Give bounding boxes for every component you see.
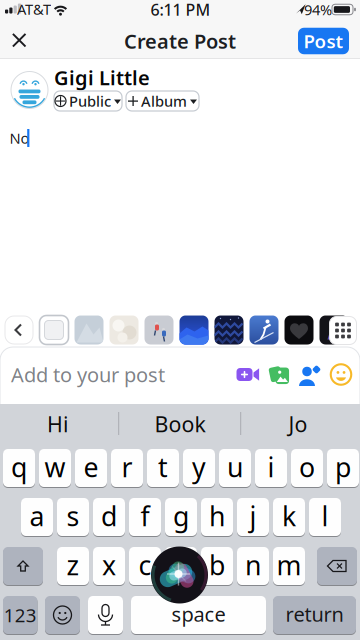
staticText: AT&T <box>17 0 51 19</box>
button[interactable]: p <box>327 448 359 487</box>
staticText: w <box>44 449 65 485</box>
button[interactable]: Hi <box>3 405 113 443</box>
staticText: t <box>158 449 168 485</box>
button[interactable]: v <box>165 546 197 585</box>
staticText: 94% <box>304 0 332 19</box>
button[interactable] <box>267 363 291 387</box>
staticText: g <box>173 498 189 534</box>
staticText: f <box>140 498 149 534</box>
button[interactable]: j <box>237 497 269 536</box>
staticText: v <box>174 547 188 583</box>
button[interactable] <box>39 315 68 344</box>
staticText: r <box>121 449 132 485</box>
staticText: Gigi Little <box>54 64 150 91</box>
button[interactable]: l <box>309 497 341 536</box>
button[interactable] <box>6 27 32 53</box>
button[interactable]: u <box>219 448 251 487</box>
button[interactable]: h <box>201 497 233 536</box>
staticText: No <box>9 128 29 148</box>
button[interactable]: Post <box>298 28 349 54</box>
button[interactable] <box>3 546 43 585</box>
staticText: e <box>83 449 98 485</box>
button[interactable] <box>45 595 80 634</box>
staticText: z <box>66 547 79 583</box>
button[interactable]: z <box>57 546 89 585</box>
button[interactable]: Book <box>122 405 237 443</box>
button[interactable] <box>284 315 313 344</box>
button[interactable] <box>88 595 123 634</box>
button[interactable]: k <box>273 497 305 536</box>
button[interactable] <box>74 315 103 344</box>
button[interactable]: Jo <box>243 405 353 443</box>
button[interactable] <box>151 546 208 603</box>
button[interactable]: x <box>93 546 125 585</box>
staticText: p <box>335 449 351 485</box>
staticText: j <box>249 498 256 534</box>
staticText: Book <box>154 410 205 438</box>
button[interactable] <box>144 315 173 344</box>
button[interactable]: m <box>273 546 305 585</box>
staticText: Public <box>69 91 111 111</box>
staticText: Hi <box>47 410 69 438</box>
staticText: Album <box>141 91 187 111</box>
staticText: k <box>282 498 296 534</box>
button[interactable]: t <box>147 448 179 487</box>
button[interactable]: a <box>21 497 53 536</box>
staticText: c <box>138 547 151 583</box>
staticText: Create Post <box>124 28 236 54</box>
button[interactable] <box>249 315 278 344</box>
button[interactable]: 123 <box>3 595 37 634</box>
button[interactable] <box>236 366 259 382</box>
staticText: m <box>276 547 301 583</box>
button[interactable] <box>329 362 353 386</box>
button[interactable]: n <box>237 546 269 585</box>
staticText: Add to your post <box>11 361 165 388</box>
staticText: 6:11 PM <box>150 0 210 20</box>
staticText: x <box>102 547 116 583</box>
staticText: l <box>321 498 328 534</box>
button[interactable] <box>329 316 356 344</box>
button[interactable]: return <box>273 595 356 634</box>
staticText: o <box>299 449 315 485</box>
button[interactable]: d <box>93 497 125 536</box>
staticText: Post <box>303 29 343 53</box>
button[interactable]: g <box>165 497 197 536</box>
button[interactable]: q <box>3 448 35 487</box>
button[interactable]: i <box>255 448 287 487</box>
button[interactable]: w <box>39 448 71 487</box>
staticText: 123 <box>4 603 37 627</box>
staticText: i <box>267 449 274 485</box>
staticText: n <box>245 547 261 583</box>
staticText: h <box>209 498 225 534</box>
button[interactable]: Public <box>54 91 122 111</box>
button[interactable]: b <box>201 546 233 585</box>
button[interactable]: f <box>129 497 161 536</box>
staticText: Jo <box>288 410 307 438</box>
staticText: s <box>66 498 79 534</box>
staticText: y <box>192 449 206 485</box>
button[interactable] <box>317 546 357 585</box>
button[interactable]: c <box>129 546 161 585</box>
button[interactable] <box>319 315 348 344</box>
staticText: space <box>171 601 225 627</box>
staticText: a <box>29 498 44 534</box>
button[interactable] <box>5 316 33 344</box>
staticText: b <box>209 547 225 583</box>
staticText: d <box>101 498 117 534</box>
button[interactable] <box>214 315 243 344</box>
button[interactable]: s <box>57 497 89 536</box>
button[interactable]: o <box>291 448 323 487</box>
button[interactable]: Album <box>126 91 199 111</box>
button[interactable]: y <box>183 448 215 487</box>
staticText: q <box>11 449 27 485</box>
staticText: u <box>227 449 243 485</box>
button[interactable] <box>109 315 138 344</box>
button[interactable] <box>298 364 322 386</box>
button[interactable]: r <box>111 448 143 487</box>
button[interactable]: space <box>131 595 266 634</box>
staticText: return <box>285 601 343 627</box>
button[interactable]: e <box>75 448 107 487</box>
button[interactable] <box>179 315 208 344</box>
